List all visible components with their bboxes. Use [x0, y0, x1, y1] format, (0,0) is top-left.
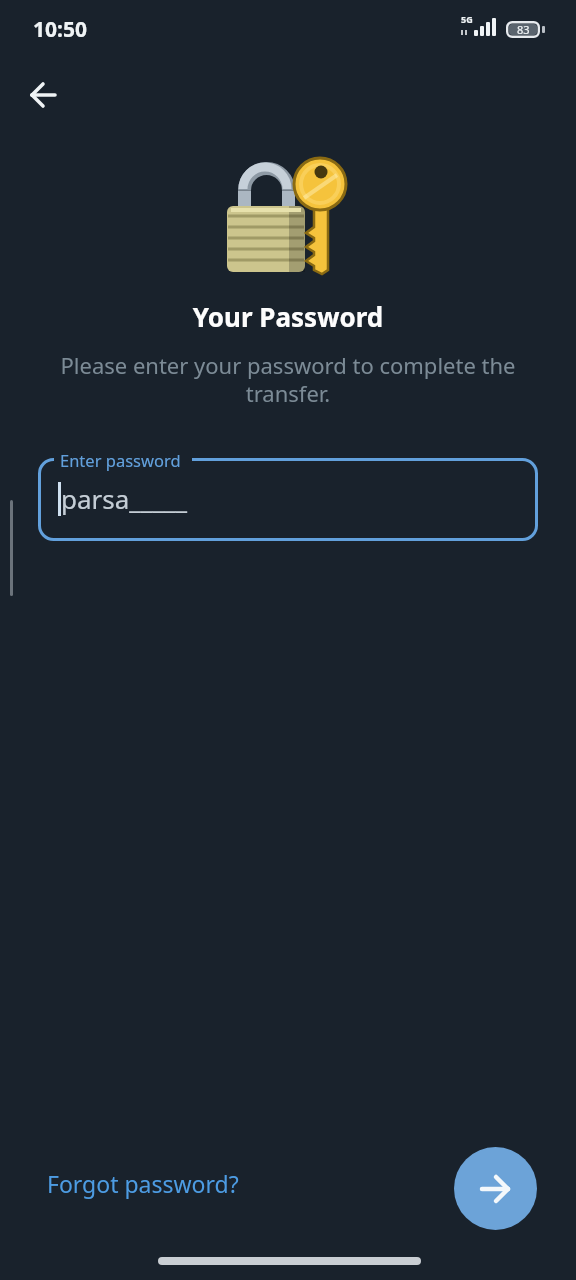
button[interactable] [18, 70, 68, 120]
staticText: parsa_____ [61, 481, 188, 516]
staticText: 83 [517, 22, 530, 37]
staticText: 10:50 [33, 15, 87, 44]
button[interactable]: Enter password [38, 458, 538, 541]
button[interactable]: Forgot password? [40, 1162, 232, 1193]
staticText: Your Password [0, 299, 576, 334]
staticText: Enter password [60, 449, 181, 471]
staticText: 5G [461, 13, 473, 25]
staticText: Please enter your password to complete t… [0, 350, 576, 408]
staticText: Forgot password? [47, 1168, 239, 1199]
button[interactable] [454, 1147, 537, 1230]
